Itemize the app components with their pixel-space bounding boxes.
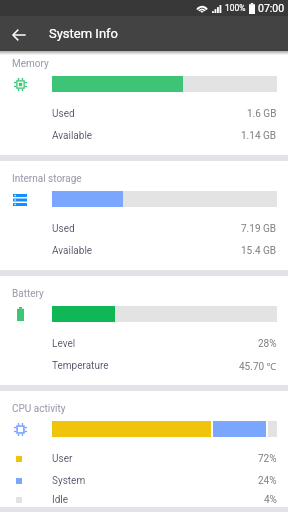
staticText: 7.19 GB [241, 223, 277, 235]
staticText: Memory [12, 58, 49, 70]
staticText: Internal storage [12, 173, 82, 185]
staticText: 45.70 ℃ [239, 359, 277, 373]
staticText: Used [52, 223, 75, 235]
button[interactable]: Memory [0, 51, 288, 155]
staticText: Battery [12, 288, 44, 300]
staticText: Used [52, 108, 75, 120]
staticText: 24% [258, 475, 277, 487]
button[interactable]: Back [0, 16, 38, 51]
staticText: 1.14 GB [241, 130, 277, 142]
staticText: Temperature [52, 360, 109, 372]
staticText: 4% [264, 494, 277, 506]
button[interactable]: CPU activity [0, 391, 288, 507]
staticText: 15.4 GB [241, 245, 277, 257]
staticText: 07:00 [258, 2, 285, 14]
staticText: Available [52, 245, 93, 257]
staticText: 72% [258, 453, 277, 465]
staticText: User [52, 453, 73, 465]
staticText: Available [52, 130, 93, 142]
staticText: System Info [49, 26, 118, 41]
button[interactable]: Internal storage [0, 161, 288, 270]
button[interactable]: Battery [0, 276, 288, 385]
staticText: 1.6 GB [247, 108, 277, 120]
staticText: 100% [225, 3, 246, 13]
staticText: Idle [52, 494, 69, 506]
staticText: CPU activity [12, 403, 66, 415]
staticText: Level [52, 338, 76, 350]
staticText: System [52, 475, 86, 487]
staticText: 28% [258, 338, 277, 350]
